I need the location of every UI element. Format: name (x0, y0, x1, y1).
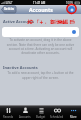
button[interactable]: More (65, 106, 81, 120)
button[interactable]: Records (0, 106, 17, 120)
staticText: Active Accounts (3, 19, 34, 24)
button[interactable] (2, 27, 79, 37)
staticText: Inactive Accounts (3, 65, 38, 70)
staticText: 按「+」新增帳戶 (27, 18, 75, 24)
button[interactable]: Scheduled (49, 106, 65, 120)
staticText: 11:47 AM (33, 1, 46, 5)
staticText: Settings (4, 6, 16, 13)
staticText: 100% (66, 1, 74, 5)
button[interactable]: Budget (33, 106, 49, 120)
staticText: To activate an account, drag it in the a… (6, 38, 75, 54)
staticText: Accounts (19, 115, 31, 119)
staticText: Scheduled (50, 115, 64, 119)
staticText: Accounts (29, 6, 53, 13)
button[interactable]: Add account (68, 6, 75, 13)
staticText: To add a new account, tap the + button a… (6, 71, 75, 79)
staticText: More (70, 115, 77, 119)
staticText: Budget (36, 115, 46, 119)
button[interactable]: Accounts (17, 106, 33, 120)
staticText: AT&T (6, 1, 13, 5)
staticText: Records (3, 115, 14, 119)
button[interactable]: Settings (1, 6, 16, 13)
